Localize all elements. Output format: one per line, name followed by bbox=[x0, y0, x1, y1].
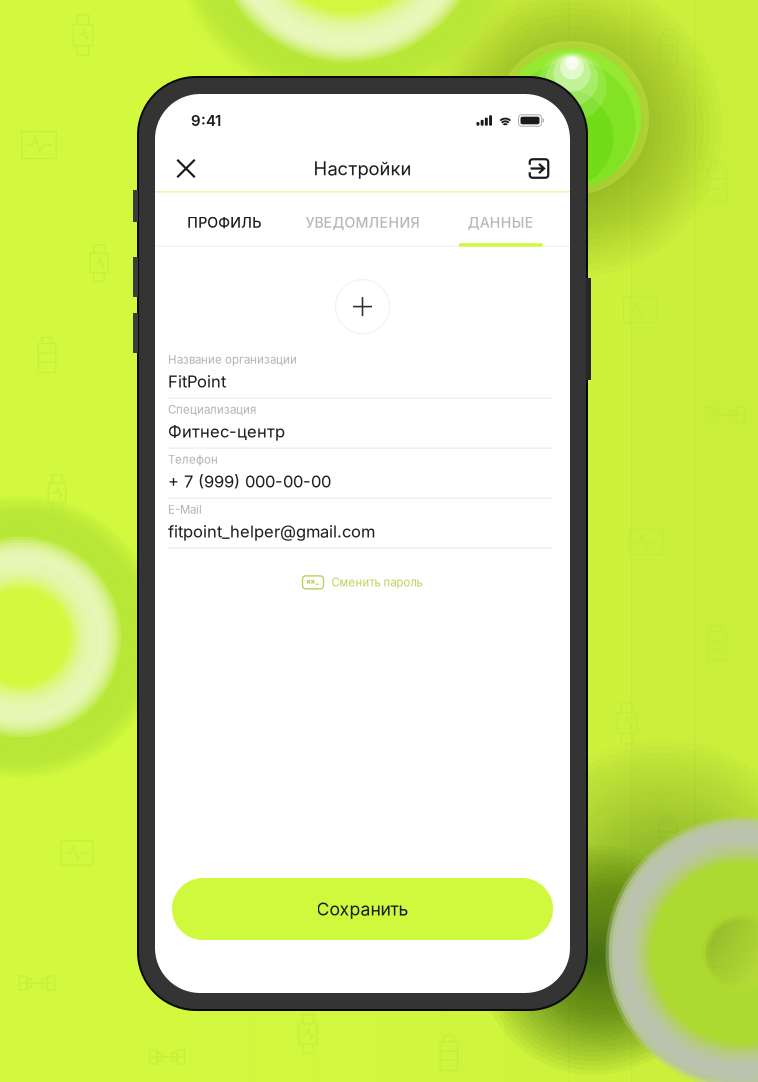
staticText: ДАННЫЕ bbox=[468, 214, 534, 231]
staticText: Телефон bbox=[168, 453, 218, 467]
button[interactable]: ДАННЫЕ bbox=[432, 193, 570, 247]
button[interactable]: ПРОФИЛЬ bbox=[155, 193, 293, 247]
staticText: Сохранить bbox=[316, 898, 408, 920]
button[interactable]: УВЕДОМЛЕНИЯ bbox=[293, 193, 432, 247]
staticText: Название организации bbox=[168, 353, 297, 367]
staticText: УВЕДОМЛЕНИЯ bbox=[305, 214, 419, 231]
button[interactable]: Сохранить bbox=[172, 878, 553, 940]
staticText: Настройки bbox=[313, 157, 411, 180]
button[interactable]: Log out bbox=[517, 146, 561, 190]
button[interactable]: Add logo bbox=[335, 280, 389, 334]
staticText: 9:41 bbox=[191, 111, 221, 130]
staticText: fitpoint_helper@gmail.com bbox=[168, 522, 375, 542]
button[interactable]: Сменить пароль bbox=[292, 569, 432, 596]
staticText: Фитнес-центр bbox=[168, 422, 285, 442]
staticText: Сменить пароль bbox=[331, 576, 422, 589]
staticText: FitPoint bbox=[168, 372, 226, 392]
button[interactable]: Close bbox=[164, 146, 208, 190]
staticText: + 7 (999) 000-00-00 bbox=[168, 472, 331, 492]
staticText: ПРОФИЛЬ bbox=[187, 214, 261, 231]
staticText: E-Mail bbox=[168, 503, 202, 517]
staticText: Специализация bbox=[168, 403, 256, 417]
